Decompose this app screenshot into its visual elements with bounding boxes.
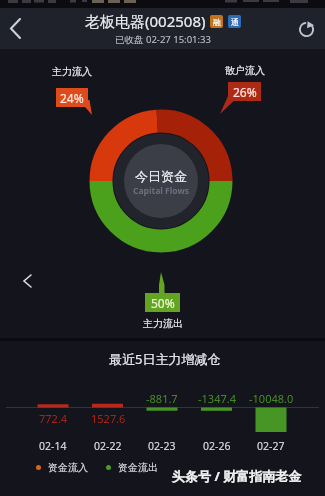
staticText: 02-23: [148, 439, 176, 453]
button[interactable]: 50%: [145, 293, 180, 312]
staticText: 02-14: [39, 439, 67, 453]
staticText: 资金流入: [48, 461, 88, 474]
staticText: 02-22: [94, 439, 122, 453]
staticText: 02-27: [257, 439, 285, 453]
staticText: 老板电器(002508): [85, 11, 206, 31]
staticText: 已收盘 02-27 15:01:33: [115, 33, 211, 46]
staticText: 主力流入: [52, 65, 92, 78]
staticText: -10048.0: [249, 391, 294, 406]
button[interactable]: 24%: [56, 88, 88, 107]
button[interactable]: 主力流出: [143, 317, 183, 330]
staticText: 772.4: [39, 411, 68, 426]
staticText: 融: [213, 17, 221, 27]
staticText: -881.7: [146, 391, 178, 406]
staticText: 头条号 / 财富指南老金: [172, 467, 302, 485]
staticText: 50%: [151, 295, 175, 311]
staticText: -1347.4: [198, 391, 236, 406]
staticText: 资金流出: [118, 461, 158, 474]
staticText: 1527.6: [91, 411, 126, 426]
button[interactable]: 主力流入: [52, 65, 92, 78]
button[interactable]: 26%: [228, 82, 261, 101]
staticText: 26%: [233, 84, 257, 100]
staticText: 今日资金: [135, 168, 187, 184]
button[interactable]: Refresh: [287, 10, 325, 48]
button[interactable]: 散户流入: [225, 64, 265, 77]
staticText: 主力流出: [143, 317, 183, 330]
staticText: 02-26: [203, 439, 231, 453]
staticText: 散户流入: [225, 64, 265, 77]
staticText: 通: [231, 17, 239, 27]
button[interactable]: Back: [0, 8, 30, 49]
staticText: Capital Flows: [133, 185, 189, 197]
staticText: 最近5日主力增减仓: [109, 350, 221, 368]
button[interactable]: Previous: [14, 268, 40, 294]
staticText: 24%: [60, 90, 84, 106]
